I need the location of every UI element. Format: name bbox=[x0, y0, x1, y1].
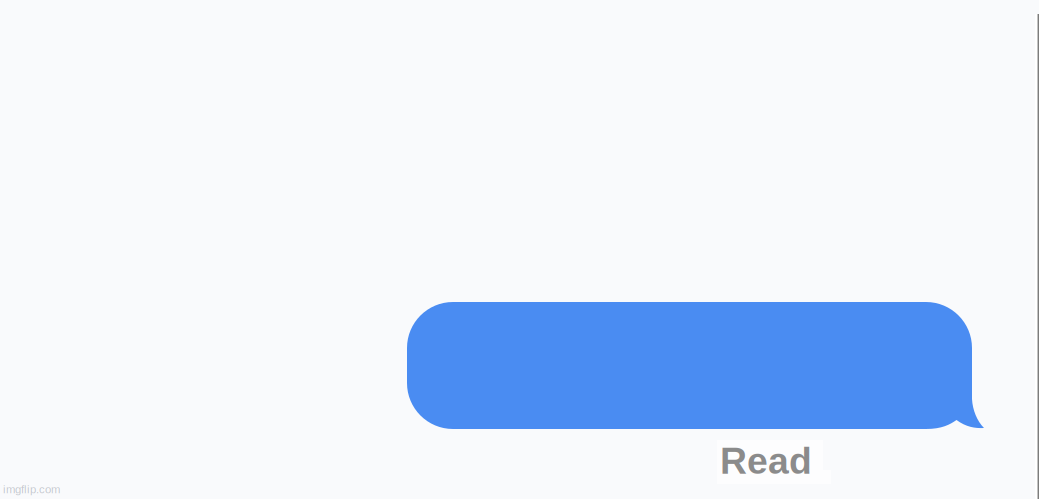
button[interactable]: Sent message bbox=[407, 302, 984, 429]
staticText: Read bbox=[720, 440, 812, 482]
staticText: imgflip.com bbox=[3, 483, 60, 496]
